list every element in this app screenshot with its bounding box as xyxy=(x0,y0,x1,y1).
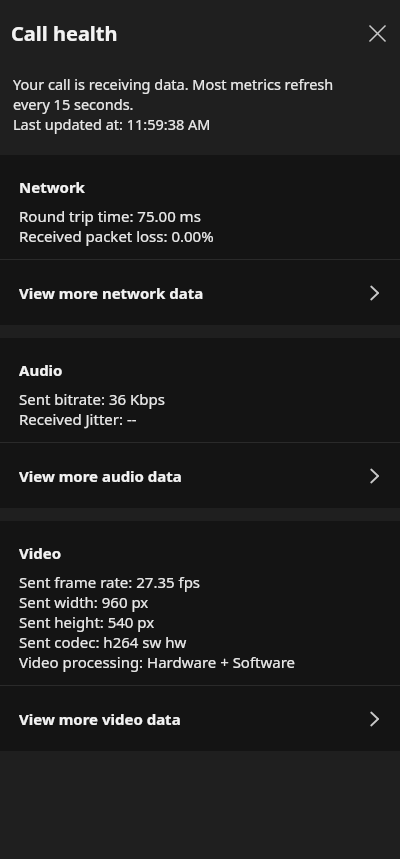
staticText: Last updated at: 11:59:38 AM xyxy=(13,114,211,134)
staticText: Received packet loss: 0.00% xyxy=(19,226,214,246)
button[interactable]: View more network data xyxy=(0,260,400,325)
button[interactable]: View more audio data xyxy=(0,443,400,508)
staticText: Video xyxy=(19,543,62,563)
staticText: Sent codec: h264 sw hw xyxy=(19,632,187,652)
staticText: Round trip time: 75.00 ms xyxy=(19,206,201,226)
staticText: View more audio data xyxy=(19,466,364,486)
staticText: Network xyxy=(19,177,85,197)
staticText: Sent bitrate: 36 Kbps xyxy=(19,389,165,409)
staticText: Your call is receiving data. Most metric… xyxy=(13,74,334,114)
staticText: View more video data xyxy=(19,709,364,729)
staticText: Call health xyxy=(11,20,362,47)
staticText: Received Jitter: -- xyxy=(19,409,137,429)
button[interactable]: View more video data xyxy=(0,686,400,751)
button[interactable]: Close xyxy=(362,18,392,48)
staticText: Sent width: 960 px xyxy=(19,592,149,612)
staticText: Video processing: Hardware + Software xyxy=(19,652,296,672)
staticText: Sent frame rate: 27.35 fps xyxy=(19,572,201,592)
staticText: View more network data xyxy=(19,283,364,303)
staticText: Sent height: 540 px xyxy=(19,612,155,632)
staticText: Audio xyxy=(19,360,63,380)
